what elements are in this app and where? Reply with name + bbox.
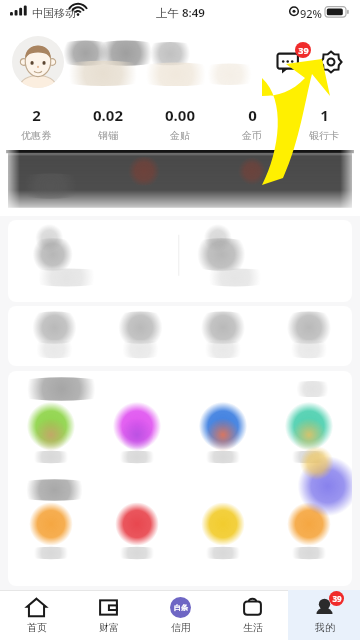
- staticText: 我的: [315, 621, 335, 634]
- button[interactable]: [0, 148, 360, 216]
- button[interactable]: [94, 405, 180, 461]
- button[interactable]: Settings: [314, 45, 348, 79]
- staticText: 金贴: [170, 129, 190, 142]
- staticText: 2: [32, 105, 41, 125]
- button[interactable]: [180, 505, 266, 557]
- button[interactable]: Promotion: [288, 449, 352, 513]
- button[interactable]: [8, 405, 94, 461]
- button[interactable]: 0: [216, 98, 288, 148]
- button[interactable]: 财富: [72, 590, 144, 640]
- staticText: 优惠券: [21, 129, 51, 142]
- button[interactable]: [180, 405, 266, 461]
- button[interactable]: 39: [288, 590, 360, 640]
- button[interactable]: Profile avatar: [12, 36, 64, 88]
- button[interactable]: [266, 405, 352, 461]
- button[interactable]: 生活: [216, 590, 288, 640]
- button[interactable]: [8, 505, 94, 557]
- button[interactable]: 1: [288, 98, 360, 148]
- staticText: 财富: [99, 621, 119, 634]
- staticText: 0.00: [165, 105, 195, 125]
- button[interactable]: Messages: [274, 45, 308, 79]
- staticText: 39: [298, 44, 309, 56]
- staticText: 首页: [27, 621, 47, 634]
- button[interactable]: 白条: [144, 590, 216, 640]
- staticText: 金币: [242, 129, 262, 142]
- staticText: 钢镚: [98, 129, 118, 142]
- staticText: 1: [320, 105, 329, 125]
- button[interactable]: [8, 220, 352, 302]
- staticText: 中国移动: [32, 6, 76, 20]
- staticText: 0.02: [93, 105, 123, 125]
- button[interactable]: 2: [0, 98, 72, 148]
- staticText: 生活: [243, 621, 263, 634]
- staticText: 银行卡: [309, 129, 339, 142]
- staticText: 白条: [174, 603, 188, 612]
- staticText: 上午 8:49: [156, 5, 205, 21]
- button[interactable]: [94, 505, 180, 557]
- button[interactable]: 0.00: [144, 98, 216, 148]
- button[interactable]: [266, 505, 352, 557]
- staticText: 39: [332, 593, 342, 604]
- button[interactable]: [8, 306, 352, 366]
- button[interactable]: 0.02: [72, 98, 144, 148]
- staticText: 92%: [300, 6, 322, 21]
- staticText: 信用: [171, 621, 191, 634]
- staticText: 0: [248, 105, 257, 125]
- button[interactable]: 首页: [0, 590, 72, 640]
